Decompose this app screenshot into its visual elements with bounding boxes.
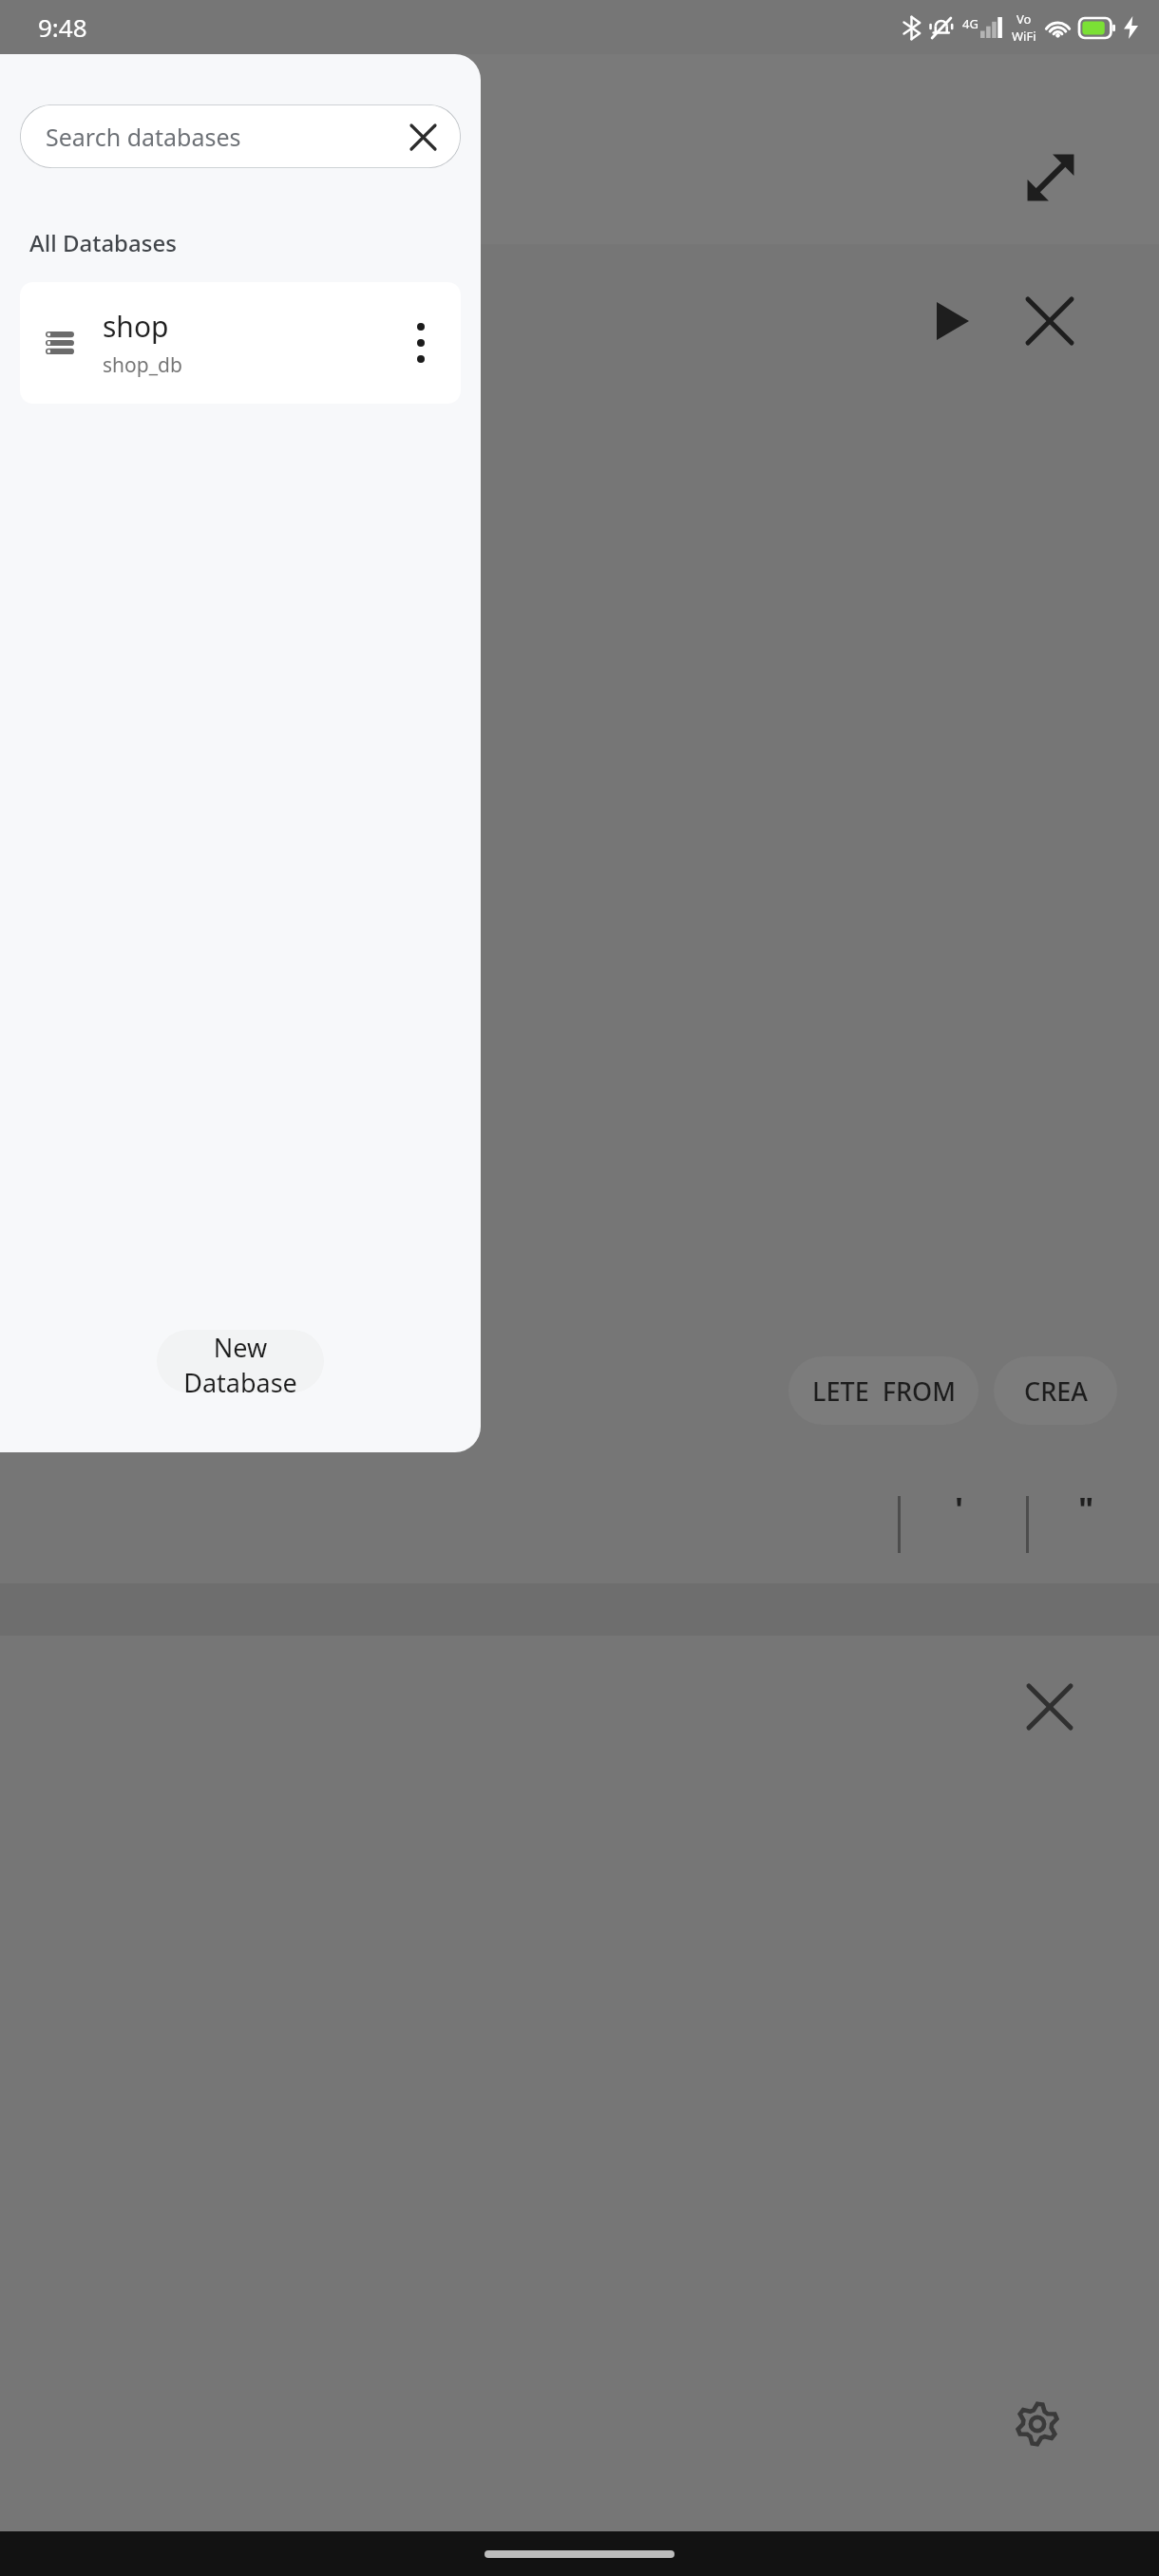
staticText: LETE FROM: [812, 1373, 956, 1409]
staticText: ": [1078, 1487, 1094, 1530]
staticText: CREA: [1024, 1373, 1088, 1409]
button[interactable]: More options: [394, 316, 447, 369]
button[interactable]: LETE FROM: [788, 1356, 978, 1425]
staticText: 4G: [962, 15, 978, 32]
button[interactable]: Close: [1012, 283, 1088, 359]
button[interactable]: Expand: [1013, 140, 1089, 216]
staticText: New Database: [157, 1330, 324, 1392]
button[interactable]: shop: [20, 282, 461, 404]
button[interactable]: New Database: [157, 1330, 324, 1392]
staticText: All Databases: [29, 227, 177, 258]
staticText: Vo: [1016, 10, 1032, 28]
button[interactable]: Clear search: [398, 112, 447, 161]
staticText: Search databases: [46, 121, 241, 153]
staticText: WiFi: [1012, 28, 1036, 45]
staticText: shop_db: [103, 351, 182, 379]
button[interactable]: Close panel: [1012, 1669, 1088, 1745]
button[interactable]: Search databases: [20, 104, 461, 168]
staticText: ': [955, 1487, 964, 1530]
button[interactable]: Run: [917, 285, 989, 357]
button[interactable]: CREA: [994, 1356, 1117, 1425]
button[interactable]: Settings: [997, 2384, 1077, 2464]
staticText: 9:48: [38, 10, 87, 44]
staticText: shop: [103, 307, 169, 346]
